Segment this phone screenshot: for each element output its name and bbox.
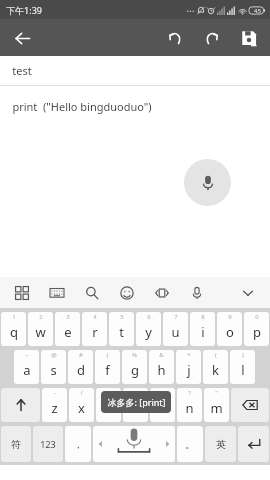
button[interactable]: ?: [177, 388, 202, 422]
button[interactable]: 9: [217, 312, 242, 346]
button[interactable]: Undo: [160, 23, 190, 53]
button[interactable]: ;: [123, 388, 148, 422]
button[interactable]: Voice input: [184, 159, 231, 206]
button[interactable]: 5: [109, 312, 134, 346]
button[interactable]: Backspace: [231, 388, 269, 422]
button[interactable]: Space: [93, 426, 175, 462]
staticText: b: [159, 399, 167, 417]
button[interactable]: 符: [1, 426, 31, 462]
button[interactable]: (: [203, 350, 228, 384]
staticText: 5: [120, 313, 124, 321]
staticText: 下午1:39: [6, 4, 42, 16]
staticText: test: [12, 63, 32, 78]
button[interactable]: @: [41, 350, 66, 384]
button[interactable]: Clipboard: [152, 283, 172, 303]
button[interactable]: Voice: [187, 283, 207, 303]
button[interactable]: Save: [234, 23, 264, 53]
button[interactable]: Hide keyboard: [238, 283, 258, 303]
staticText: 45: [254, 7, 261, 15]
staticText: 0: [255, 313, 259, 321]
staticText: 2: [39, 313, 43, 321]
staticText: e: [64, 323, 72, 341]
staticText: y: [145, 323, 152, 341]
button[interactable]: Emoji: [117, 283, 137, 303]
button[interactable]: 6: [136, 312, 161, 346]
button[interactable]: print ("Hello bingduoduo"): [0, 86, 270, 126]
staticText: 7: [174, 313, 178, 321]
staticText: a: [23, 361, 31, 379]
button[interactable]: 0: [244, 312, 269, 346]
staticText: q: [10, 323, 18, 341]
staticText: o: [226, 323, 234, 341]
button[interactable]: Back: [8, 24, 36, 52]
button[interactable]: 1: [1, 312, 26, 346]
button[interactable]: 4: [82, 312, 107, 346]
staticText: 123: [40, 438, 56, 450]
staticText: 。: [185, 438, 195, 451]
button[interactable]: 3: [55, 312, 80, 346]
staticText: ?: [188, 389, 191, 397]
button[interactable]: /: [69, 388, 94, 422]
staticText: i: [201, 323, 205, 341]
button[interactable]: Enter: [238, 426, 269, 462]
staticText: ": [215, 389, 218, 397]
staticText: j: [187, 361, 191, 379]
button[interactable]: #: [68, 350, 93, 384]
button[interactable]: 。: [177, 426, 203, 462]
staticText: #: [79, 351, 83, 359]
staticText: v: [132, 399, 139, 417]
staticText: :: [108, 389, 110, 397]
button[interactable]: %: [122, 350, 147, 384]
staticText: ~: [25, 351, 29, 359]
button[interactable]: 7: [163, 312, 188, 346]
button[interactable]: :: [96, 388, 121, 422]
staticText: (: [215, 351, 217, 359]
staticText: /: [80, 389, 83, 397]
button[interactable]: 英: [205, 426, 236, 462]
staticText: s: [50, 361, 57, 379]
button[interactable]: *: [176, 350, 201, 384]
staticText: %: [132, 351, 137, 359]
staticText: x: [78, 399, 85, 417]
staticText: 4: [93, 313, 97, 321]
staticText: z: [51, 399, 58, 417]
staticText: ): [242, 351, 244, 359]
button[interactable]: 123: [33, 426, 63, 462]
staticText: h: [157, 361, 166, 379]
staticText: !: [162, 389, 164, 397]
staticText: 冰多多: [print]: [107, 396, 166, 408]
button[interactable]: ，: [65, 426, 91, 462]
staticText: u: [171, 323, 180, 341]
staticText: k: [212, 361, 219, 379]
staticText: l: [241, 361, 245, 379]
staticText: w: [35, 323, 46, 341]
button[interactable]: 2: [28, 312, 53, 346]
button[interactable]: ~: [14, 350, 39, 384]
button[interactable]: ): [230, 350, 255, 384]
staticText: m: [210, 399, 223, 417]
staticText: 8: [201, 313, 205, 321]
staticText: 6: [147, 313, 151, 321]
staticText: p: [253, 323, 261, 341]
button[interactable]: {: [95, 350, 120, 384]
staticText: 9: [228, 313, 232, 321]
button[interactable]: Redo: [197, 23, 227, 53]
button[interactable]: Keyboard: [47, 283, 67, 303]
button[interactable]: test: [0, 56, 270, 85]
button[interactable]: Search: [82, 283, 102, 303]
button[interactable]: Apps: [12, 283, 32, 303]
staticText: @: [51, 351, 57, 359]
staticText: c: [105, 399, 112, 417]
button[interactable]: 8: [190, 312, 215, 346]
staticText: 3: [66, 313, 70, 321]
button[interactable]: -: [42, 388, 67, 422]
staticText: t: [119, 323, 124, 341]
staticText: 符: [11, 438, 21, 451]
staticText: print ("Hello bingduoduo"): [12, 99, 152, 114]
button[interactable]: ": [204, 388, 229, 422]
staticText: &: [159, 351, 164, 359]
staticText: f: [105, 361, 110, 379]
button[interactable]: !: [150, 388, 175, 422]
button[interactable]: &: [149, 350, 174, 384]
button[interactable]: Shift: [1, 388, 40, 422]
